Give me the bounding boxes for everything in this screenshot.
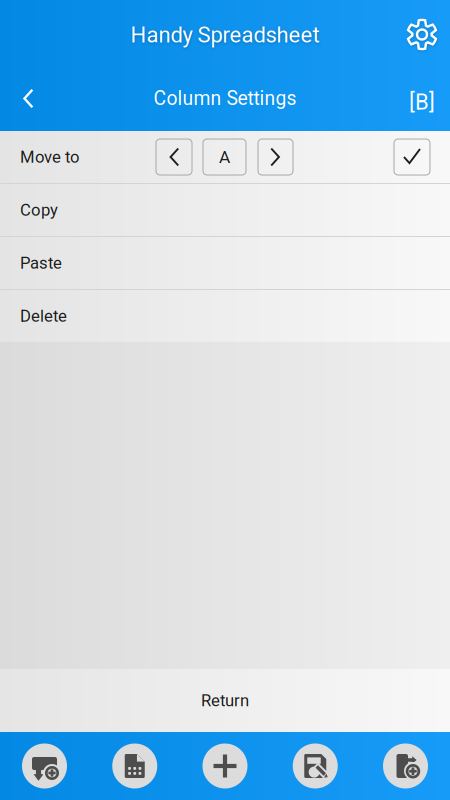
staticText: Paste — [20, 253, 62, 273]
button[interactable]: Open file — [22, 743, 67, 788]
button[interactable]: Copy — [0, 184, 450, 236]
button[interactable]: Save as — [293, 743, 338, 788]
button[interactable]: Export — [383, 743, 428, 788]
button[interactable] — [258, 139, 293, 175]
button[interactable]: Move to — [0, 131, 450, 183]
staticText: Column Settings — [153, 87, 296, 110]
staticText: Move to — [20, 147, 80, 167]
button[interactable] — [156, 139, 192, 175]
button[interactable]: Column B — [394, 70, 450, 126]
button[interactable]: Settings — [394, 5, 450, 61]
staticText: Delete — [20, 306, 67, 326]
button[interactable]: Back — [0, 70, 56, 126]
button[interactable]: A — [203, 139, 246, 175]
staticText: Copy — [20, 200, 58, 220]
button[interactable]: Return — [0, 669, 450, 732]
staticText: [B] — [409, 89, 435, 115]
staticText: Return — [201, 691, 249, 710]
button[interactable]: Delete — [0, 290, 450, 342]
button[interactable]: Paste — [0, 237, 450, 289]
button[interactable]: New spreadsheet — [112, 743, 157, 788]
button[interactable] — [394, 139, 430, 175]
staticText: Handy Spreadsheet — [130, 22, 319, 48]
staticText: A — [219, 147, 230, 167]
button[interactable]: Add — [202, 743, 247, 788]
